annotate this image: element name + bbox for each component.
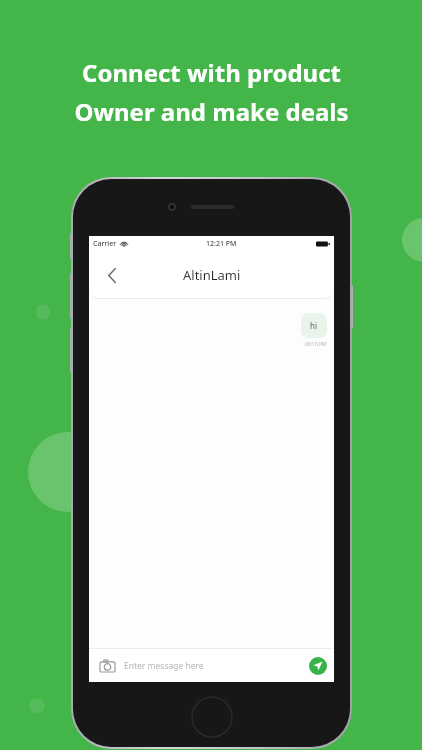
staticText: Owner and make deals (74, 95, 349, 128)
button[interactable]: Send message (309, 657, 327, 675)
button[interactable]: Enter message here (124, 660, 309, 672)
button[interactable]: Back (100, 263, 124, 287)
staticText: 12:21 PM (206, 239, 237, 249)
staticText: AltinLami (183, 266, 241, 284)
button[interactable]: Attach photo (96, 655, 118, 677)
staticText: hi (310, 320, 318, 331)
staticText: Carrier (93, 239, 117, 249)
button[interactable]: hi (301, 313, 327, 338)
staticText: Enter message here (124, 660, 204, 672)
staticText: 06:16 PM (305, 341, 327, 348)
staticText: Connect with product (82, 56, 341, 89)
